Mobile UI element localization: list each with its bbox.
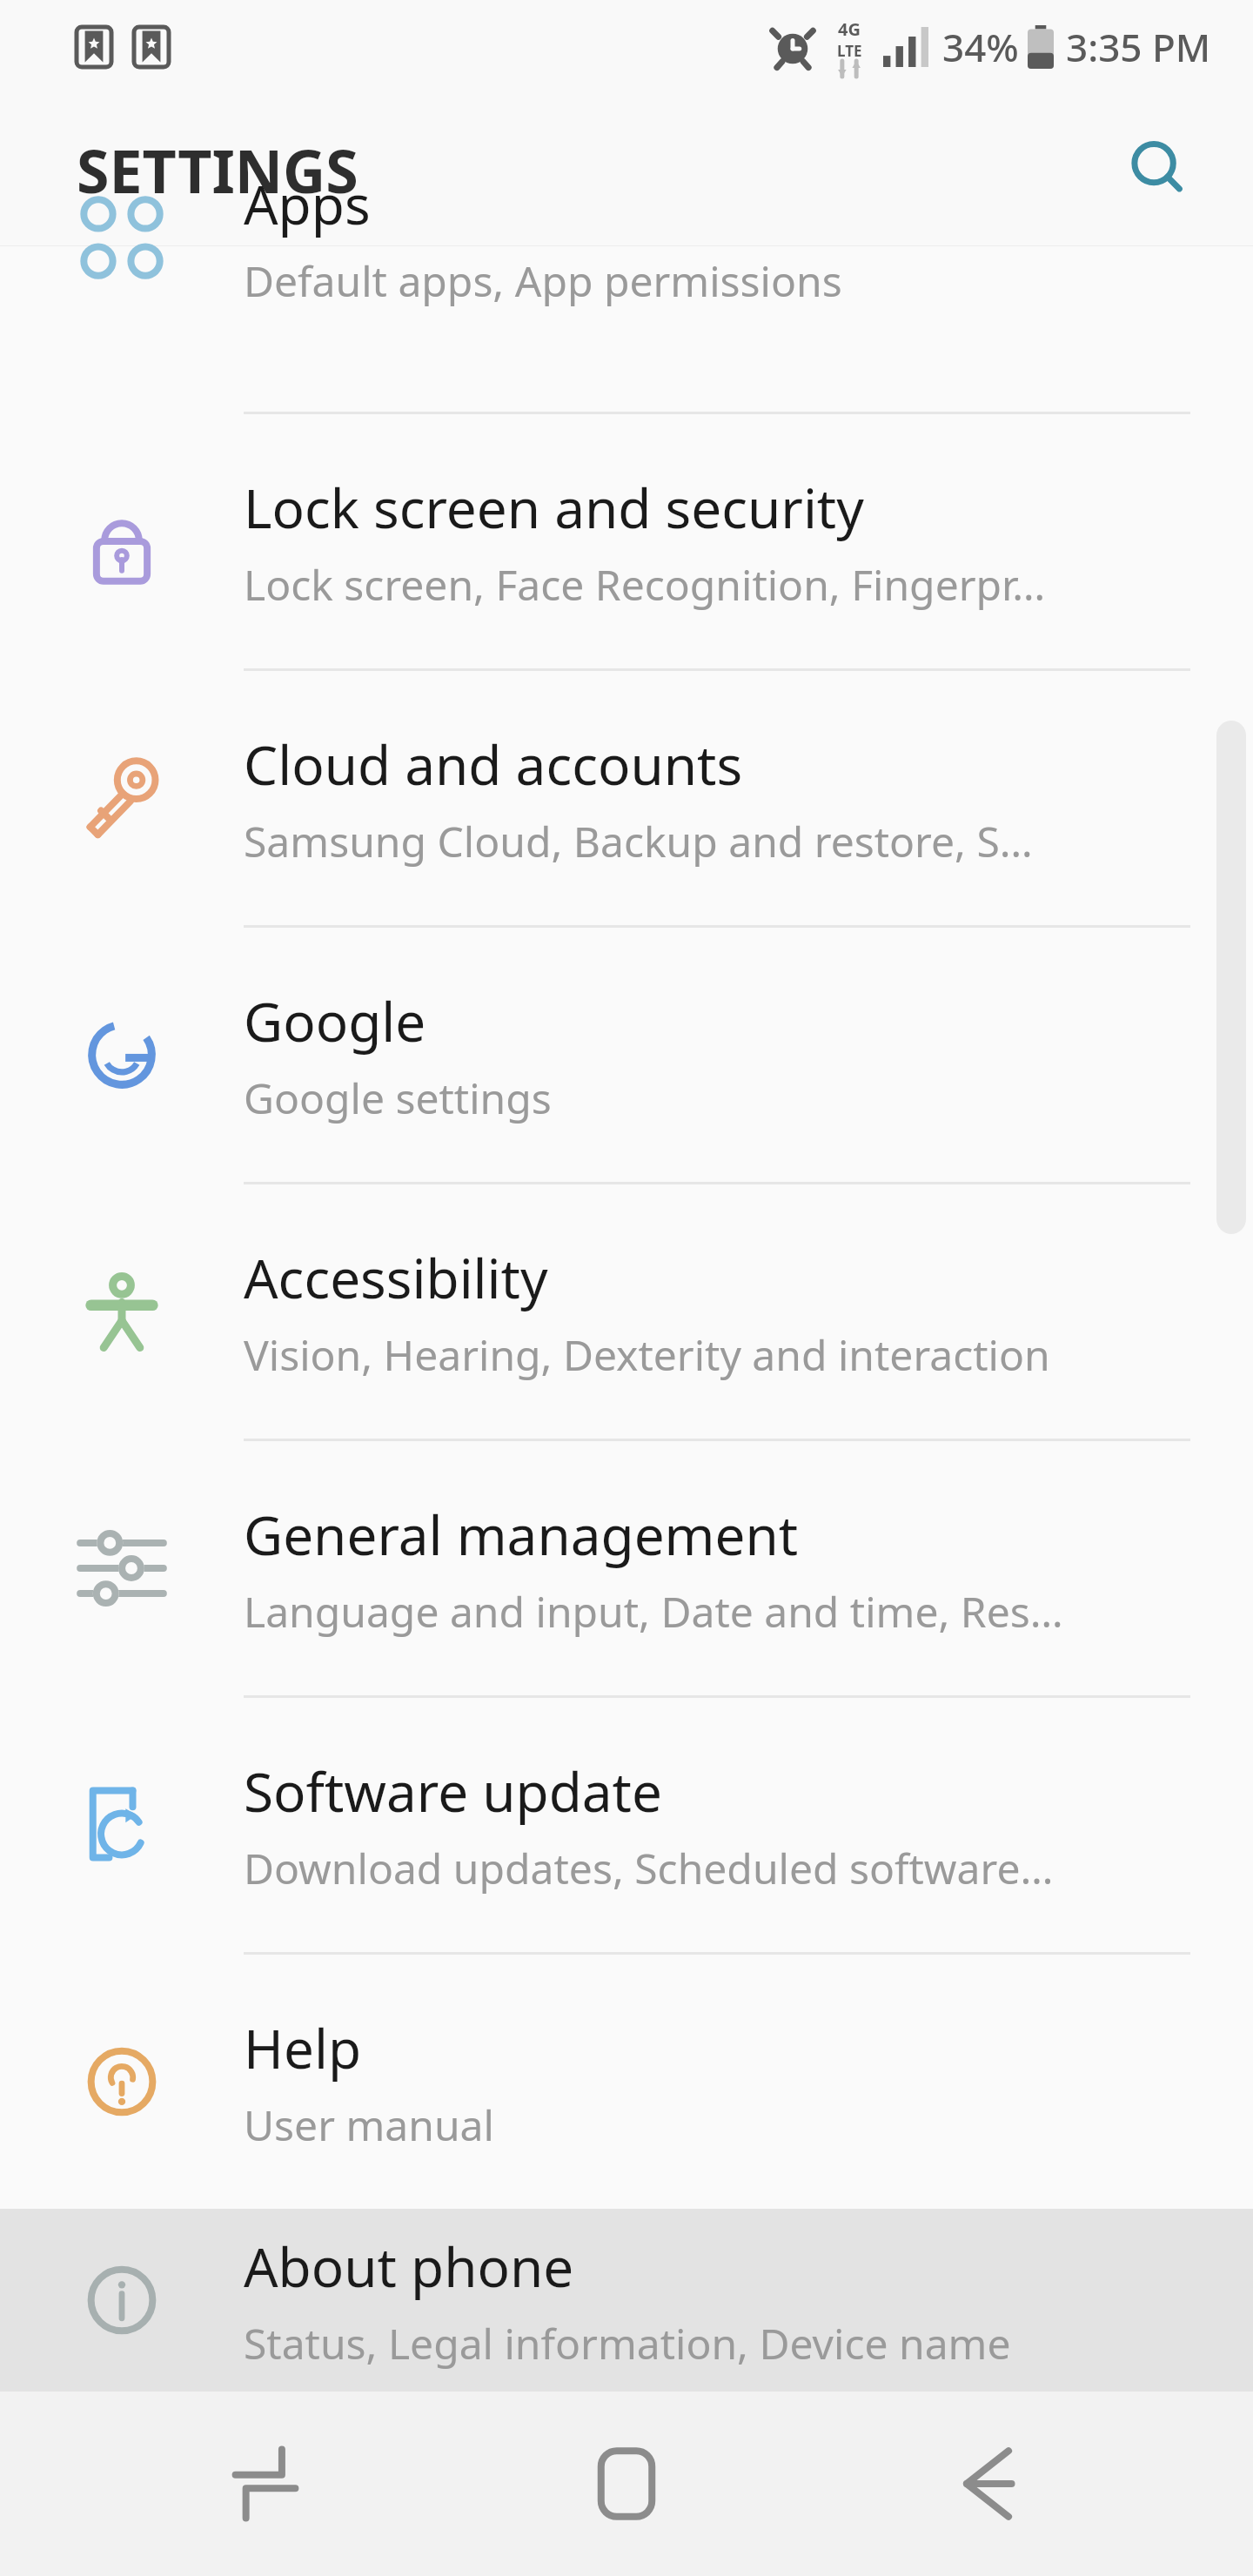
staticText: Help xyxy=(244,2011,362,2084)
staticText: Software update xyxy=(244,1754,662,1828)
button[interactable]: Search xyxy=(1107,117,1211,222)
button[interactable]: Cloud and accounts xyxy=(0,671,1253,925)
button[interactable]: Software update xyxy=(0,1698,1253,1952)
button[interactable]: Apps xyxy=(0,246,1253,412)
staticText: Samsung Cloud, Backup and restore, S… xyxy=(244,813,1033,869)
button[interactable]: Google xyxy=(0,928,1253,1182)
staticText: Status, Legal information, Device name xyxy=(244,2315,1011,2371)
staticText: Language and input, Date and time, Res… xyxy=(244,1583,1063,1640)
staticText: Google xyxy=(244,984,426,1057)
staticText: User manual xyxy=(244,2096,494,2153)
staticText: Download updates, Scheduled software… xyxy=(244,1840,1054,1896)
staticText: 3:35 PM xyxy=(1066,21,1211,73)
staticText: Lock screen and security xyxy=(244,471,864,544)
staticText: SETTINGS xyxy=(77,130,358,211)
button[interactable]: Accessibility xyxy=(0,1184,1253,1439)
staticText: Apps xyxy=(244,167,371,240)
button[interactable]: Home xyxy=(531,2392,722,2576)
staticText: Cloud and accounts xyxy=(244,728,743,801)
staticText: About phone xyxy=(244,2230,574,2303)
button[interactable]: Help xyxy=(0,1955,1253,2209)
staticText: Default apps, App permissions xyxy=(244,252,842,309)
staticText: General management xyxy=(244,1498,799,1571)
staticText: 34% xyxy=(942,21,1019,73)
button[interactable]: Recents xyxy=(170,2392,361,2576)
button[interactable]: Back xyxy=(892,2392,1083,2576)
button[interactable]: General management xyxy=(0,1441,1253,1695)
staticText: Vision, Hearing, Dexterity and interacti… xyxy=(244,1326,1050,1383)
staticText: 4G xyxy=(838,17,861,41)
button[interactable]: Lock screen and security xyxy=(0,414,1253,668)
staticText: Google settings xyxy=(244,1070,552,1126)
staticText: LTE xyxy=(837,41,862,61)
staticText: Lock screen, Face Recognition, Fingerpr… xyxy=(244,556,1046,613)
button[interactable]: About phone xyxy=(0,2209,1253,2392)
staticText: Accessibility xyxy=(244,1241,548,1314)
